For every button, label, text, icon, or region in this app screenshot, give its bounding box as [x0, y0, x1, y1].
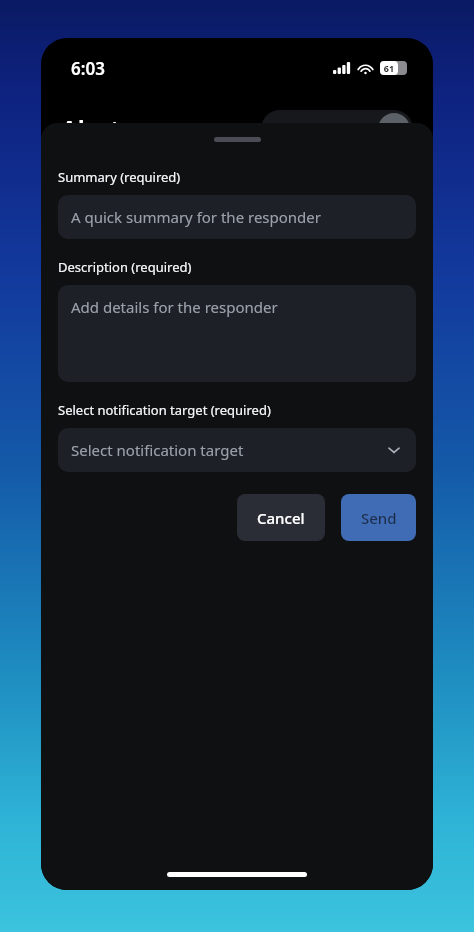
staticText: Add details for the responder	[71, 297, 278, 317]
staticText: 6:03	[71, 57, 105, 80]
staticText: Summary (required)	[58, 168, 181, 186]
button[interactable]: Add details for the responder	[58, 285, 416, 382]
staticText: 61	[380, 62, 398, 74]
staticText: Description (required)	[58, 258, 192, 276]
staticText: Send	[361, 508, 397, 528]
button[interactable]: Send	[341, 494, 416, 541]
staticText: Select notification target	[71, 440, 244, 460]
button[interactable]: A quick summary for the responder	[58, 195, 416, 239]
staticText: Select notification target (required)	[58, 401, 271, 419]
staticText: Alerts	[61, 112, 133, 146]
staticText: Cancel	[257, 508, 305, 528]
button[interactable]: Cancel	[237, 494, 325, 541]
staticText: A quick summary for the responder	[71, 207, 321, 227]
button[interactable]: Search	[261, 110, 413, 148]
button[interactable]: Select notification target	[58, 428, 416, 472]
